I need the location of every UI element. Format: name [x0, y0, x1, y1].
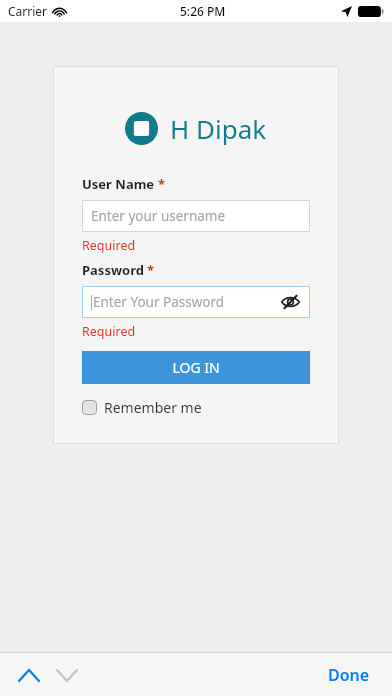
staticText: Remember me — [104, 398, 202, 417]
staticText: Done — [328, 664, 370, 686]
button[interactable]: LOG IN — [82, 351, 310, 384]
staticText: Required — [82, 323, 136, 340]
button[interactable]: Done — [322, 658, 376, 692]
staticText: 5:26 PM — [180, 3, 226, 19]
button[interactable]: Next field — [52, 660, 82, 690]
staticText: H Dipak — [170, 111, 267, 146]
button[interactable]: Enter Your Password — [82, 286, 310, 318]
staticText: Enter Your Password — [93, 293, 225, 311]
staticText: * — [147, 261, 155, 279]
staticText: Password — [82, 261, 144, 279]
button[interactable]: Previous field — [14, 660, 44, 690]
staticText: Carrier — [8, 3, 48, 19]
staticText: Required — [82, 237, 136, 254]
staticText: Enter your username — [91, 207, 226, 225]
button[interactable]: Enter your username — [82, 200, 310, 232]
staticText: * — [158, 175, 166, 193]
button[interactable]: Remember me — [82, 398, 202, 417]
button[interactable]: Show password — [279, 291, 301, 313]
staticText: LOG IN — [172, 358, 220, 377]
staticText: User Name — [82, 175, 155, 193]
